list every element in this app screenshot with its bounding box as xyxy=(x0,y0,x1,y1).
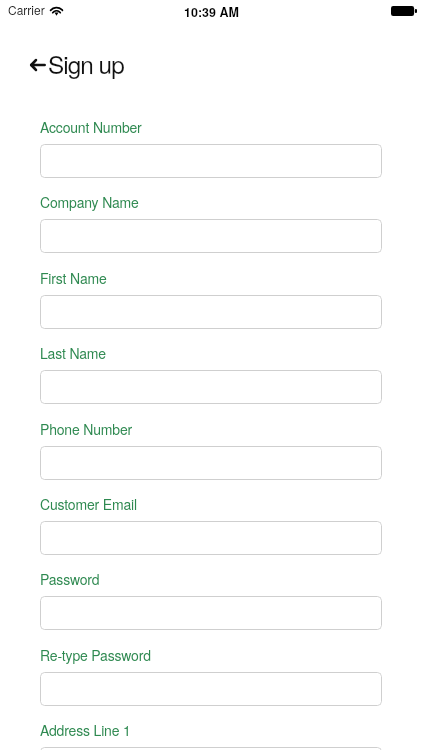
button[interactable]: Back xyxy=(22,44,132,84)
button[interactable] xyxy=(40,596,382,630)
staticText: Sign up xyxy=(48,46,124,81)
staticText: Address Line 1 xyxy=(40,720,131,740)
staticText: Customer Email xyxy=(40,494,137,514)
button[interactable] xyxy=(40,446,382,480)
button[interactable] xyxy=(40,219,382,253)
staticText: Re-type Password xyxy=(40,645,151,665)
staticText: Password xyxy=(40,569,100,589)
staticText: Carrier xyxy=(8,1,45,18)
button[interactable] xyxy=(40,370,382,404)
button[interactable] xyxy=(40,747,382,750)
button[interactable] xyxy=(40,144,382,178)
staticText: Company Name xyxy=(40,192,139,212)
staticText: Account Number xyxy=(40,117,142,137)
staticText: First Name xyxy=(40,268,107,288)
staticText: Last Name xyxy=(40,343,106,363)
other: Back xyxy=(30,58,45,72)
staticText: Phone Number xyxy=(40,419,132,439)
button[interactable] xyxy=(40,521,382,555)
staticText: 10:39 AM xyxy=(184,3,239,21)
button[interactable] xyxy=(40,295,382,329)
button[interactable] xyxy=(40,672,382,706)
